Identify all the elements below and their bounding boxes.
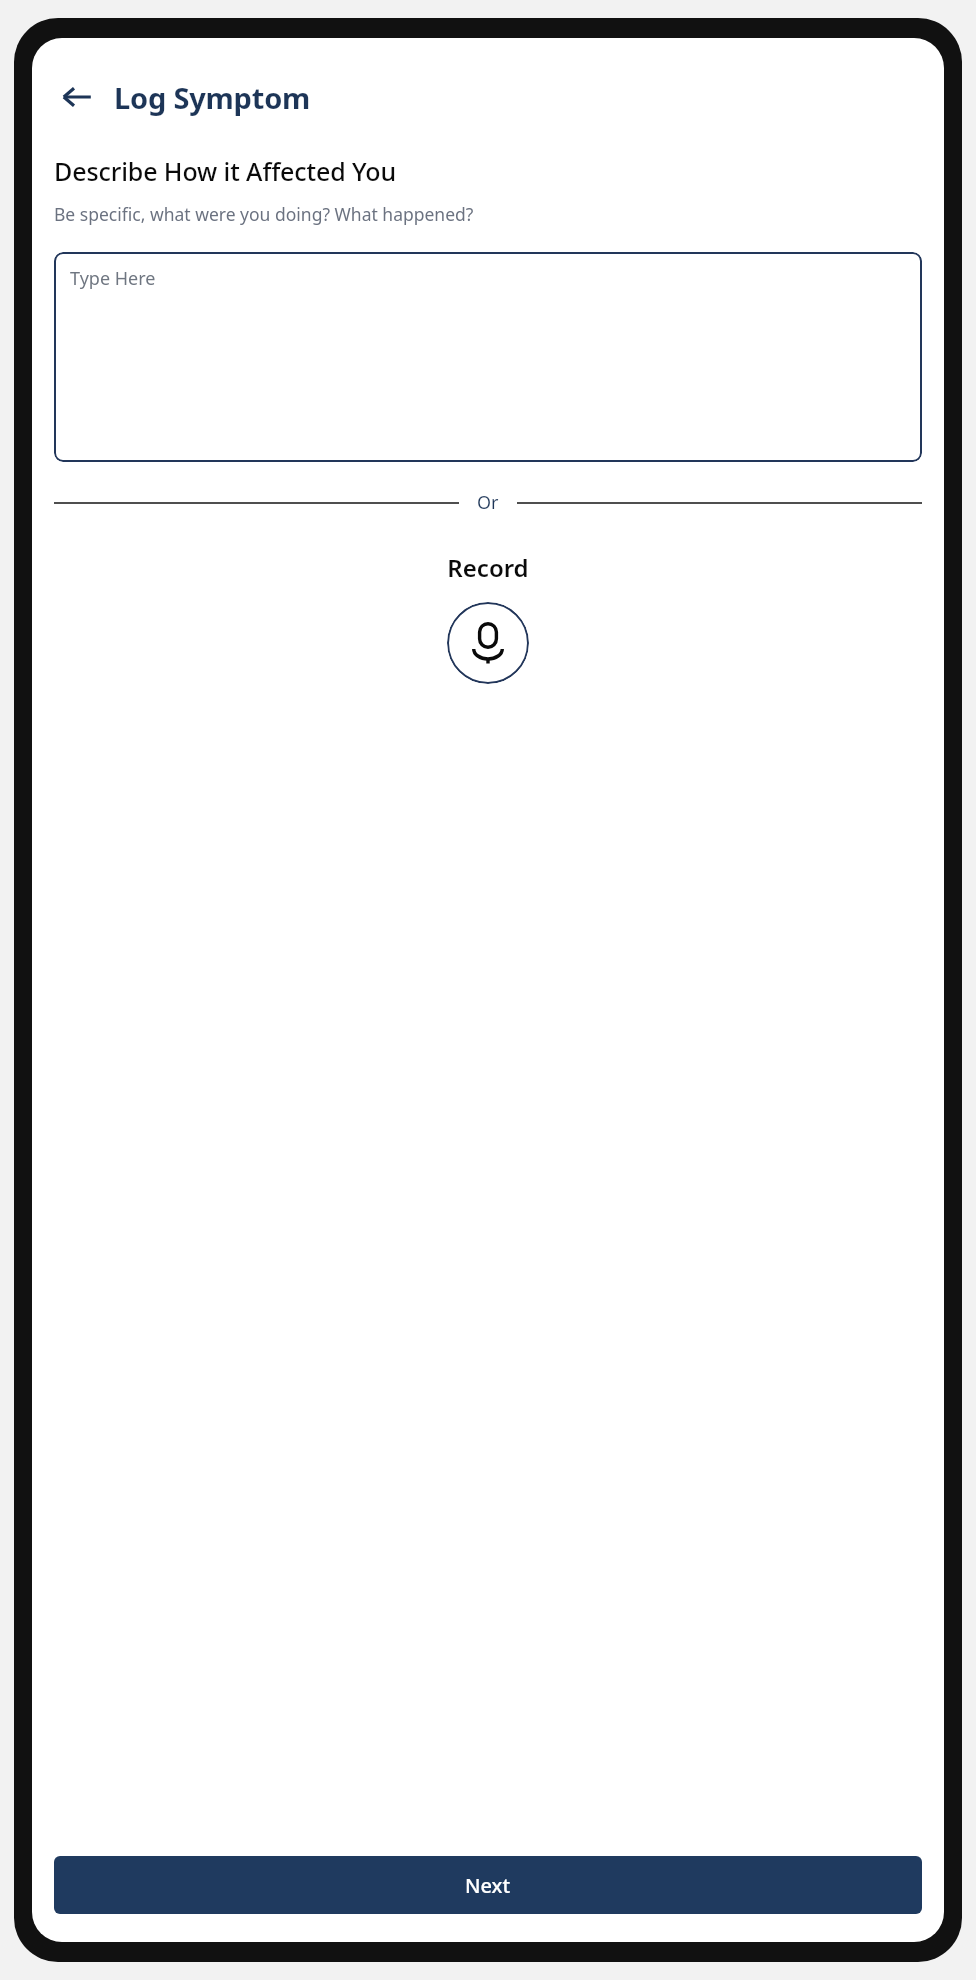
staticText: Or (477, 490, 499, 515)
button[interactable]: Record voice note (447, 602, 529, 684)
button[interactable]: Next (54, 1856, 922, 1914)
button[interactable]: Type Here (54, 252, 922, 462)
staticText: Log Symptom (114, 78, 311, 117)
staticText: Record (54, 551, 922, 584)
staticText: Next (465, 1872, 511, 1899)
staticText: Describe How it Affected You (54, 154, 397, 188)
staticText: Be specific, what were you doing? What h… (54, 202, 853, 226)
staticText: Type Here (70, 266, 156, 291)
button[interactable]: Back (54, 74, 100, 120)
